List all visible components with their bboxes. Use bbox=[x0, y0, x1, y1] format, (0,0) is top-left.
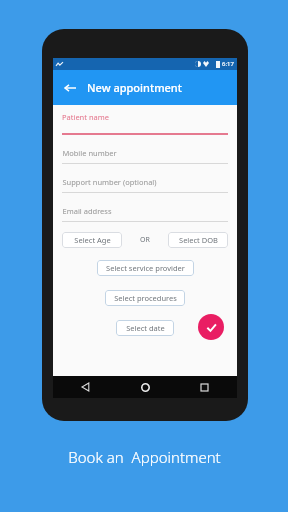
staticText: Support number (optional) bbox=[62, 177, 157, 187]
staticText: Select date bbox=[126, 323, 165, 333]
staticText: Patient name bbox=[62, 112, 109, 122]
button[interactable]: Confirm appointment bbox=[198, 314, 224, 340]
button[interactable]: Select service provider bbox=[97, 260, 194, 276]
button[interactable]: Back bbox=[77, 378, 95, 396]
staticText: New appointment bbox=[87, 80, 182, 95]
staticText: Select DOB bbox=[179, 235, 218, 245]
button[interactable]: Select Age bbox=[62, 232, 122, 248]
staticText: Mobile number bbox=[62, 148, 117, 158]
staticText: 6:17 bbox=[222, 60, 234, 68]
staticText: Email address bbox=[62, 206, 112, 216]
staticText: Select service provider bbox=[106, 263, 185, 273]
button[interactable]: Select DOB bbox=[168, 232, 228, 248]
button[interactable]: Select procedures bbox=[105, 290, 185, 306]
staticText: Select Age bbox=[74, 235, 111, 245]
staticText: OR bbox=[140, 235, 150, 245]
button[interactable]: Back bbox=[59, 77, 81, 99]
button[interactable]: Recent apps bbox=[195, 378, 213, 396]
staticText: Book an Appointment bbox=[68, 447, 221, 467]
staticText: Select procedures bbox=[114, 293, 177, 303]
button[interactable]: Home bbox=[136, 378, 154, 396]
button[interactable]: Select date bbox=[116, 320, 174, 336]
